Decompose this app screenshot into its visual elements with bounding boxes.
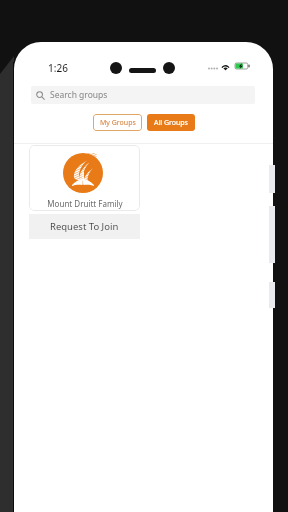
- staticText: Request To Join: [50, 220, 119, 233]
- button[interactable]: My Groups: [93, 114, 142, 131]
- staticText: My Groups: [100, 118, 136, 128]
- button[interactable]: Request To Join: [29, 214, 140, 239]
- button[interactable]: Search groups: [31, 86, 255, 104]
- button[interactable]: All Groups: [147, 114, 195, 131]
- staticText: Mount Druitt Family: [47, 198, 123, 209]
- staticText: 1:26: [48, 61, 68, 75]
- staticText: All Groups: [154, 118, 188, 128]
- staticText: Search groups: [50, 89, 108, 101]
- button[interactable]: Mount Druitt Family: [29, 145, 140, 211]
